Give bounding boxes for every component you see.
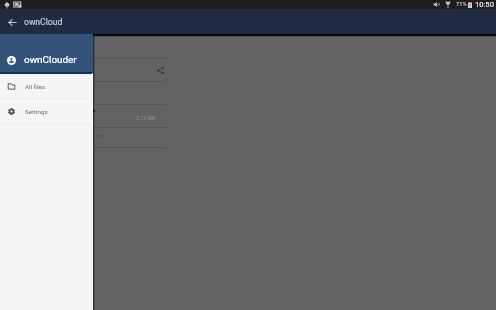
button[interactable]: All files	[0, 74, 93, 98]
staticText: ownCloud	[24, 17, 63, 27]
staticText: 10:50	[475, 0, 494, 9]
button[interactable]: ownClouder	[0, 34, 93, 72]
staticText: rts	[96, 133, 103, 139]
staticText: Settings	[25, 108, 48, 115]
staticText: All files	[25, 83, 45, 90]
staticText: 2.13 MB	[136, 115, 156, 121]
button[interactable]: Back	[0, 10, 24, 34]
staticText: 71%	[456, 1, 467, 8]
button[interactable]: Share	[156, 66, 164, 74]
button[interactable]: Settings	[0, 99, 93, 124]
staticText: ownClouder	[24, 54, 77, 66]
